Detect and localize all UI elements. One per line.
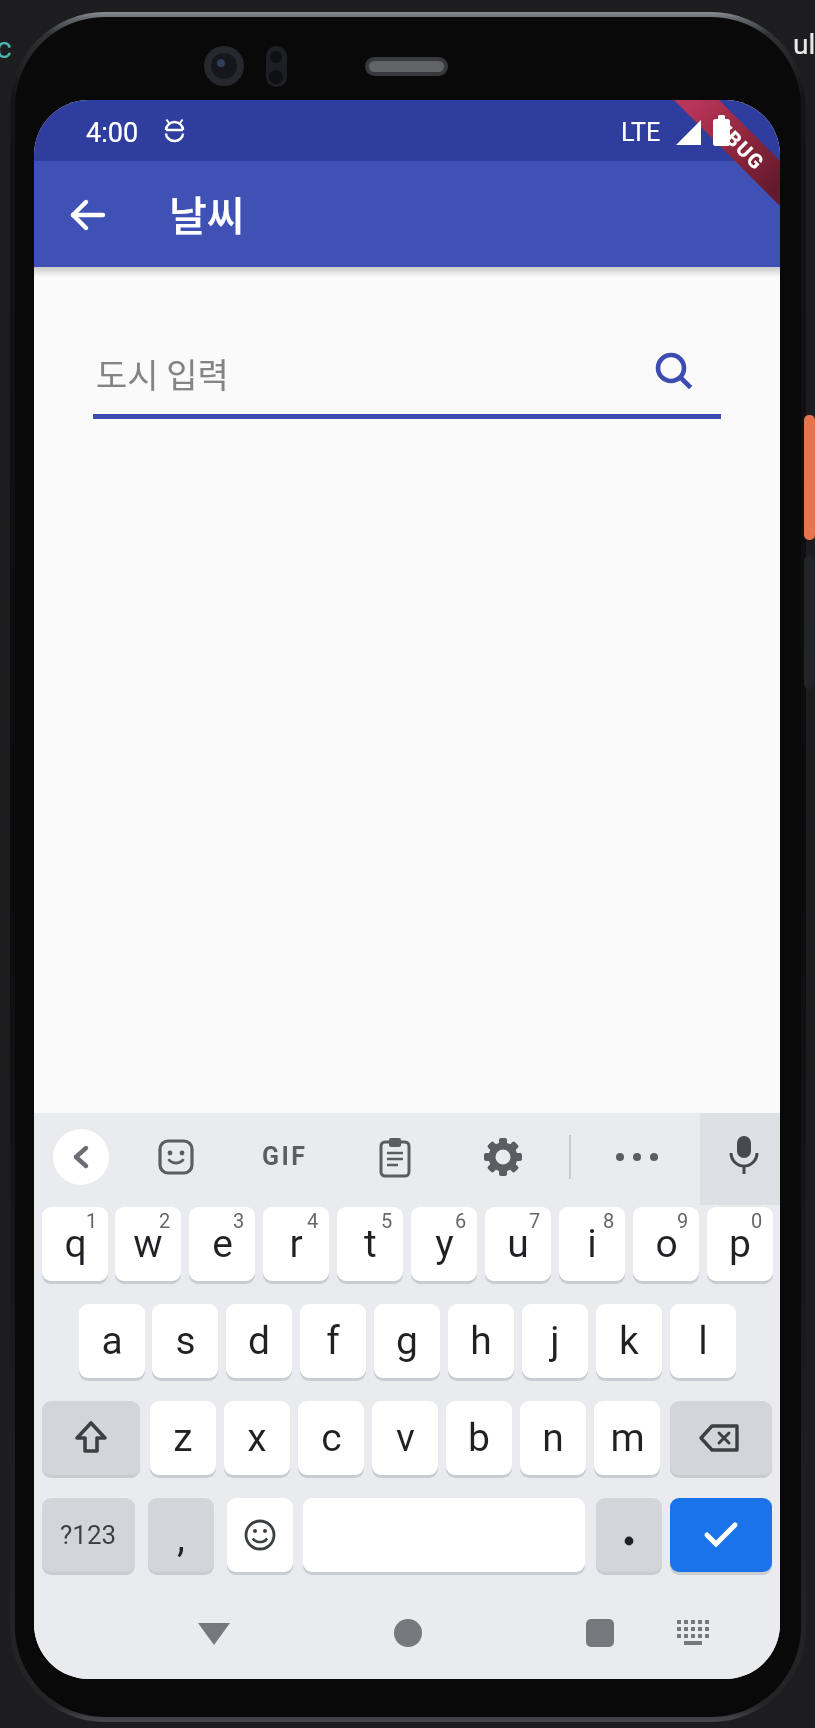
staticText: ul (793, 28, 815, 61)
button[interactable]: c (298, 1401, 364, 1475)
button[interactable] (596, 1498, 662, 1572)
button[interactable] (670, 1401, 772, 1475)
button[interactable] (675, 1618, 715, 1650)
button[interactable] (670, 1498, 772, 1572)
button[interactable]: u (485, 1207, 551, 1281)
button[interactable]: d (226, 1304, 292, 1378)
staticText: 1 (86, 1209, 98, 1232)
staticText: h (470, 1318, 492, 1364)
button[interactable]: k (596, 1304, 662, 1378)
staticText: 도시 입력 (96, 349, 229, 398)
button[interactable]: h (448, 1304, 514, 1378)
button[interactable]: x (224, 1401, 290, 1475)
button[interactable]: g (374, 1304, 440, 1378)
staticText: p (729, 1221, 751, 1267)
button[interactable]: l (670, 1304, 736, 1378)
button[interactable]: j (522, 1304, 588, 1378)
staticText: z (173, 1415, 193, 1461)
button[interactable] (227, 1498, 293, 1572)
button[interactable] (42, 1401, 140, 1475)
staticText: b (468, 1415, 490, 1461)
staticText: e (212, 1221, 233, 1267)
staticText: 3 (233, 1209, 245, 1232)
staticText: q (64, 1221, 87, 1267)
button[interactable] (53, 1129, 109, 1185)
button[interactable]: w (115, 1207, 181, 1281)
button[interactable]: ?123 (42, 1498, 135, 1572)
staticText: g (396, 1318, 418, 1364)
button[interactable] (726, 1136, 762, 1178)
button[interactable] (378, 1138, 412, 1178)
staticText: , (177, 1514, 185, 1561)
staticText: 5 (381, 1209, 393, 1232)
button[interactable]: t (337, 1207, 403, 1281)
button[interactable] (700, 1113, 780, 1205)
button[interactable] (194, 1615, 234, 1651)
staticText: 7 (529, 1209, 541, 1232)
staticText: x (247, 1415, 267, 1461)
staticText: 2 (159, 1209, 171, 1232)
button[interactable] (586, 1619, 614, 1647)
staticText: s (175, 1318, 196, 1364)
button[interactable]: r (263, 1207, 329, 1281)
staticText: n (542, 1415, 564, 1461)
button[interactable]: o (633, 1207, 699, 1281)
staticText: LTE (621, 118, 661, 147)
staticText: 6 (455, 1209, 467, 1232)
staticText: 4 (307, 1209, 319, 1232)
staticText: 날씨 (169, 183, 245, 242)
staticText: 0 (751, 1209, 763, 1232)
staticText: ?123 (60, 1520, 117, 1550)
staticText: i (587, 1221, 597, 1267)
staticText: m (610, 1415, 645, 1461)
button[interactable]: a (79, 1304, 145, 1378)
staticText: v (396, 1415, 415, 1461)
staticText: f (326, 1318, 340, 1364)
button[interactable] (93, 340, 721, 414)
staticText: 8 (603, 1209, 615, 1232)
staticText: j (550, 1318, 560, 1364)
button[interactable] (394, 1619, 422, 1647)
button[interactable]: GIF (262, 1142, 308, 1171)
button[interactable] (34, 161, 780, 267)
staticText: c (0, 30, 12, 65)
button[interactable]: i (559, 1207, 625, 1281)
button[interactable] (648, 345, 700, 397)
staticText: o (655, 1221, 678, 1267)
button[interactable]: v (372, 1401, 438, 1475)
button[interactable]: m (594, 1401, 660, 1475)
button[interactable] (70, 197, 106, 233)
staticText: l (698, 1318, 708, 1364)
staticText: k (619, 1318, 639, 1364)
staticText: r (289, 1221, 303, 1267)
button[interactable] (614, 1150, 660, 1164)
staticText: EBUG (712, 117, 770, 175)
button[interactable]: p (707, 1207, 773, 1281)
button[interactable]: b (446, 1401, 512, 1475)
button[interactable] (158, 1139, 194, 1175)
staticText: c (321, 1415, 342, 1461)
button[interactable] (484, 1138, 522, 1176)
button[interactable]: y (411, 1207, 477, 1281)
staticText: a (101, 1318, 123, 1364)
staticText: 9 (677, 1209, 689, 1232)
staticText: d (248, 1318, 270, 1364)
button[interactable]: q (42, 1207, 108, 1281)
staticText: u (507, 1221, 529, 1267)
button[interactable]: f (300, 1304, 366, 1378)
button[interactable]: e (189, 1207, 255, 1281)
staticText: t (364, 1221, 377, 1267)
staticText: 4:00 (86, 117, 139, 149)
button[interactable]: z (150, 1401, 216, 1475)
staticText: w (133, 1221, 163, 1267)
button[interactable]: , (148, 1498, 214, 1572)
staticText: y (435, 1221, 454, 1267)
button[interactable]: n (520, 1401, 586, 1475)
button[interactable]: s (152, 1304, 218, 1378)
